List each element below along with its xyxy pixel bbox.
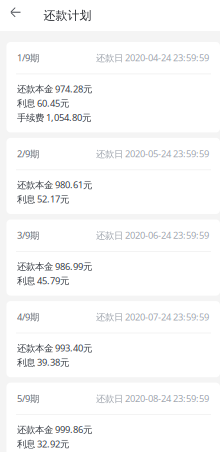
staticText: 2/9期 <box>17 147 39 160</box>
staticText: 还款计划 <box>43 8 91 23</box>
staticText: 还款本金 993.40元 <box>17 342 92 354</box>
staticText: 3/9期 <box>17 229 39 241</box>
staticText: 利息 60.45元 <box>17 97 69 109</box>
staticText: 还款日 2020-06-24 23:59:59 <box>96 229 209 241</box>
staticText: 利息 39.38元 <box>17 356 69 368</box>
staticText: 手续费 1,054.80元 <box>17 111 91 124</box>
staticText: 1/9期 <box>17 52 39 64</box>
staticText: 利息 52.17元 <box>17 193 69 205</box>
staticText: 利息 32.92元 <box>17 438 69 450</box>
staticText: 5/9期 <box>17 392 39 405</box>
staticText: 还款本金 999.86元 <box>17 423 92 436</box>
staticText: 4/9期 <box>17 311 39 323</box>
staticText: 还款日 2020-07-24 23:59:59 <box>96 311 209 323</box>
staticText: 利息 45.79元 <box>17 274 69 287</box>
staticText: 还款日 2020-08-24 23:59:59 <box>96 392 209 405</box>
button[interactable]: 返回 <box>0 0 29 31</box>
staticText: 还款本金 974.28元 <box>17 83 92 95</box>
staticText: 还款日 2020-05-24 23:59:59 <box>96 147 209 160</box>
staticText: 还款日 2020-04-24 23:59:59 <box>96 52 209 64</box>
staticText: 还款本金 980.61元 <box>17 178 92 191</box>
staticText: 还款本金 986.99元 <box>17 260 92 272</box>
